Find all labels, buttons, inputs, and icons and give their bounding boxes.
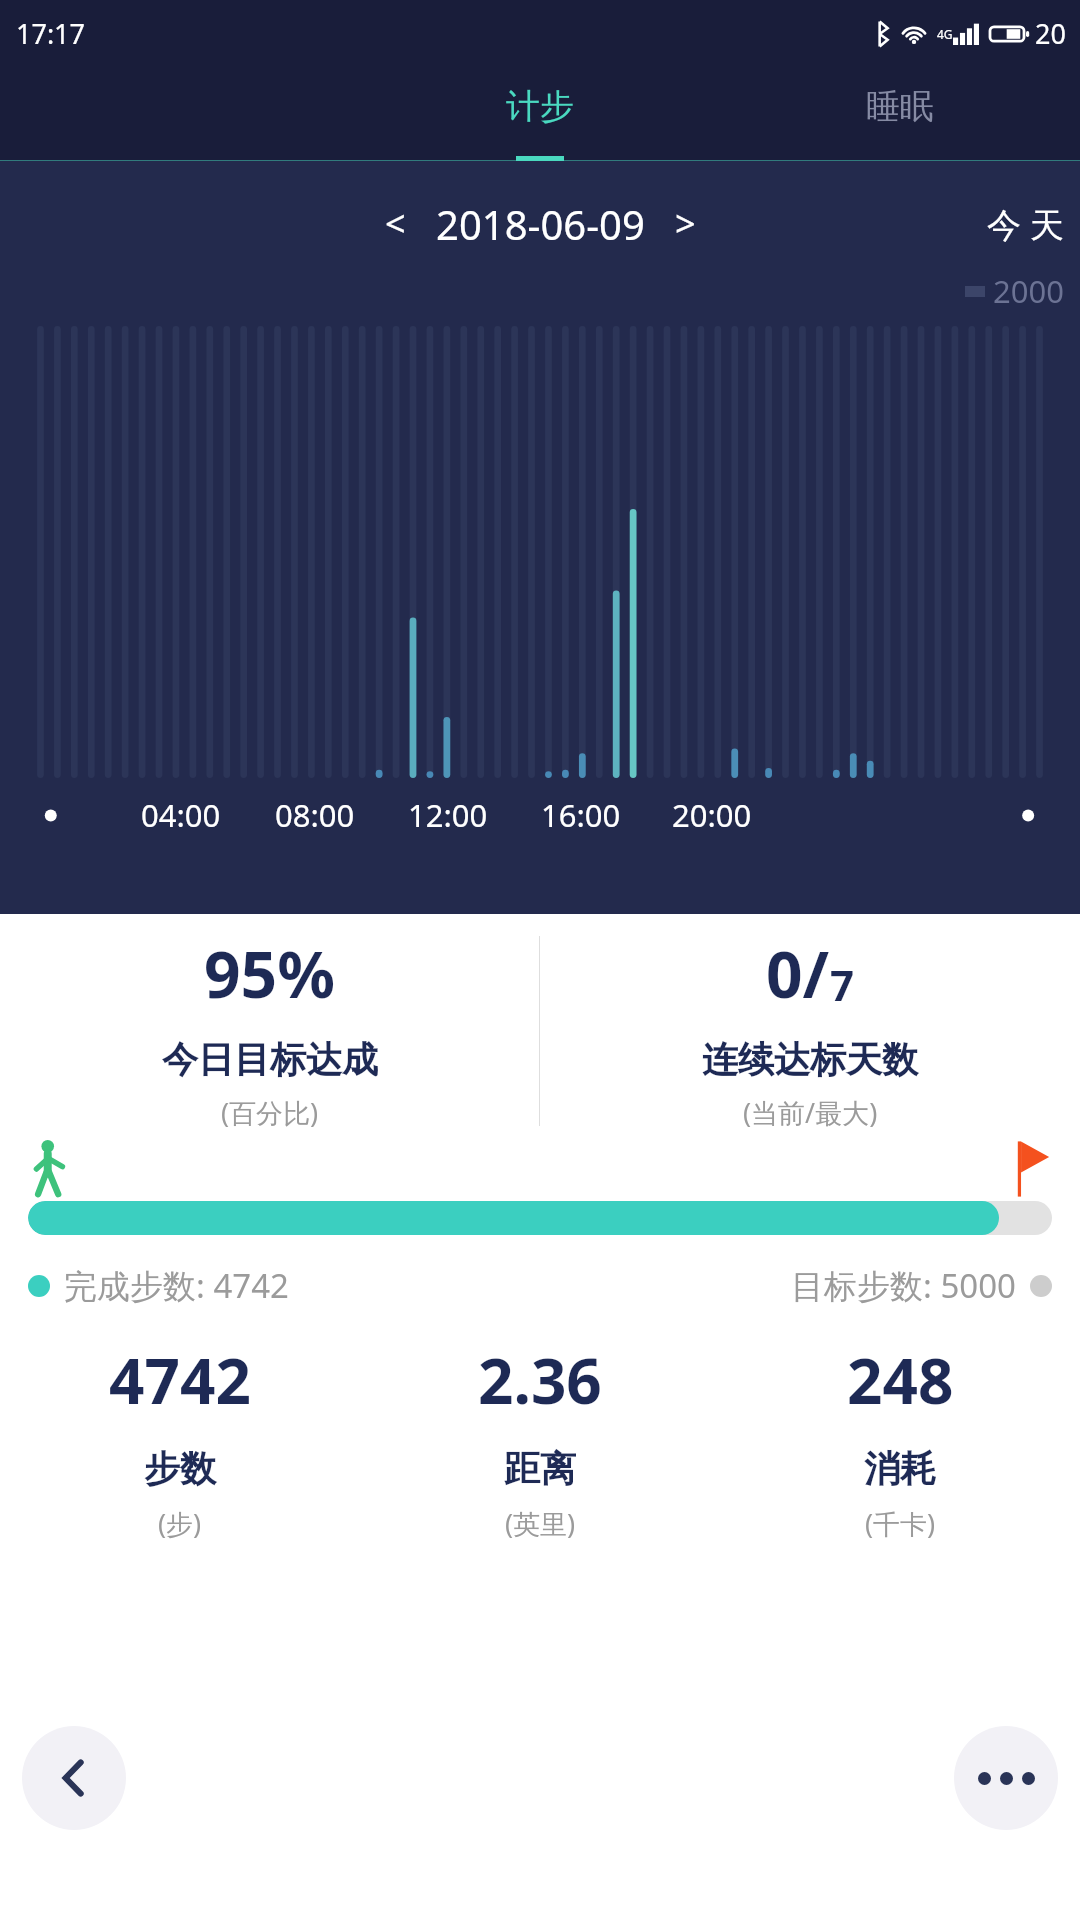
staticText: 今 天 <box>987 201 1064 247</box>
staticText: (千卡) <box>865 1505 936 1542</box>
staticText: 4742 <box>109 1338 251 1422</box>
staticText: 2018-06-09 <box>436 197 645 251</box>
staticText: 08:00 <box>275 794 355 836</box>
button[interactable]: Back <box>22 1726 126 1830</box>
staticText: 20 <box>1035 15 1066 52</box>
staticText: (步) <box>158 1505 202 1542</box>
button[interactable]: 0/ <box>540 930 1080 1131</box>
staticText: (百分比) <box>221 1094 319 1131</box>
staticText: (英里) <box>505 1505 576 1542</box>
button[interactable]: 今 天 <box>977 193 1080 255</box>
staticText: 12:00 <box>408 794 488 836</box>
button[interactable]: 2.36 <box>360 1338 720 1542</box>
staticText: 04:00 <box>141 794 221 836</box>
button[interactable]: 睡眠 <box>720 67 1080 161</box>
staticText: 连续达标天数 <box>702 1037 918 1082</box>
staticText: 95% <box>204 930 335 1017</box>
staticText: 消耗 <box>864 1446 936 1491</box>
staticText: 4G <box>937 26 953 42</box>
staticText: 今日目标达成 <box>162 1037 378 1082</box>
button[interactable]: Previous day <box>373 191 418 256</box>
button[interactable]: Next day <box>663 191 708 256</box>
staticText: 7 <box>830 956 855 1013</box>
staticText: 距离 <box>504 1446 576 1491</box>
staticText: 2000 <box>993 270 1064 312</box>
staticText: > <box>675 199 696 248</box>
staticText: 2.36 <box>478 1338 602 1422</box>
staticText: 计步 <box>506 85 574 128</box>
staticText: 目标步数: 5000 <box>791 1263 1016 1308</box>
staticText: 16:00 <box>541 794 621 836</box>
button[interactable] <box>28 1201 1052 1235</box>
staticText: 248 <box>847 1338 954 1422</box>
staticText: 17:17 <box>16 15 86 52</box>
staticText: 完成步数: 4742 <box>64 1263 289 1308</box>
staticText: 20:00 <box>672 794 752 836</box>
button[interactable]: 4742 <box>0 1338 360 1542</box>
staticText: 睡眠 <box>866 85 934 128</box>
staticText: 0/ <box>766 930 830 1017</box>
staticText: (当前/最大) <box>743 1094 878 1131</box>
button[interactable]: 248 <box>720 1338 1080 1542</box>
staticText: < <box>385 199 406 248</box>
button[interactable]: 95% <box>0 930 539 1131</box>
button[interactable]: 计步 <box>360 67 720 161</box>
staticText: 步数 <box>144 1446 216 1491</box>
button[interactable]: More options <box>954 1726 1058 1830</box>
